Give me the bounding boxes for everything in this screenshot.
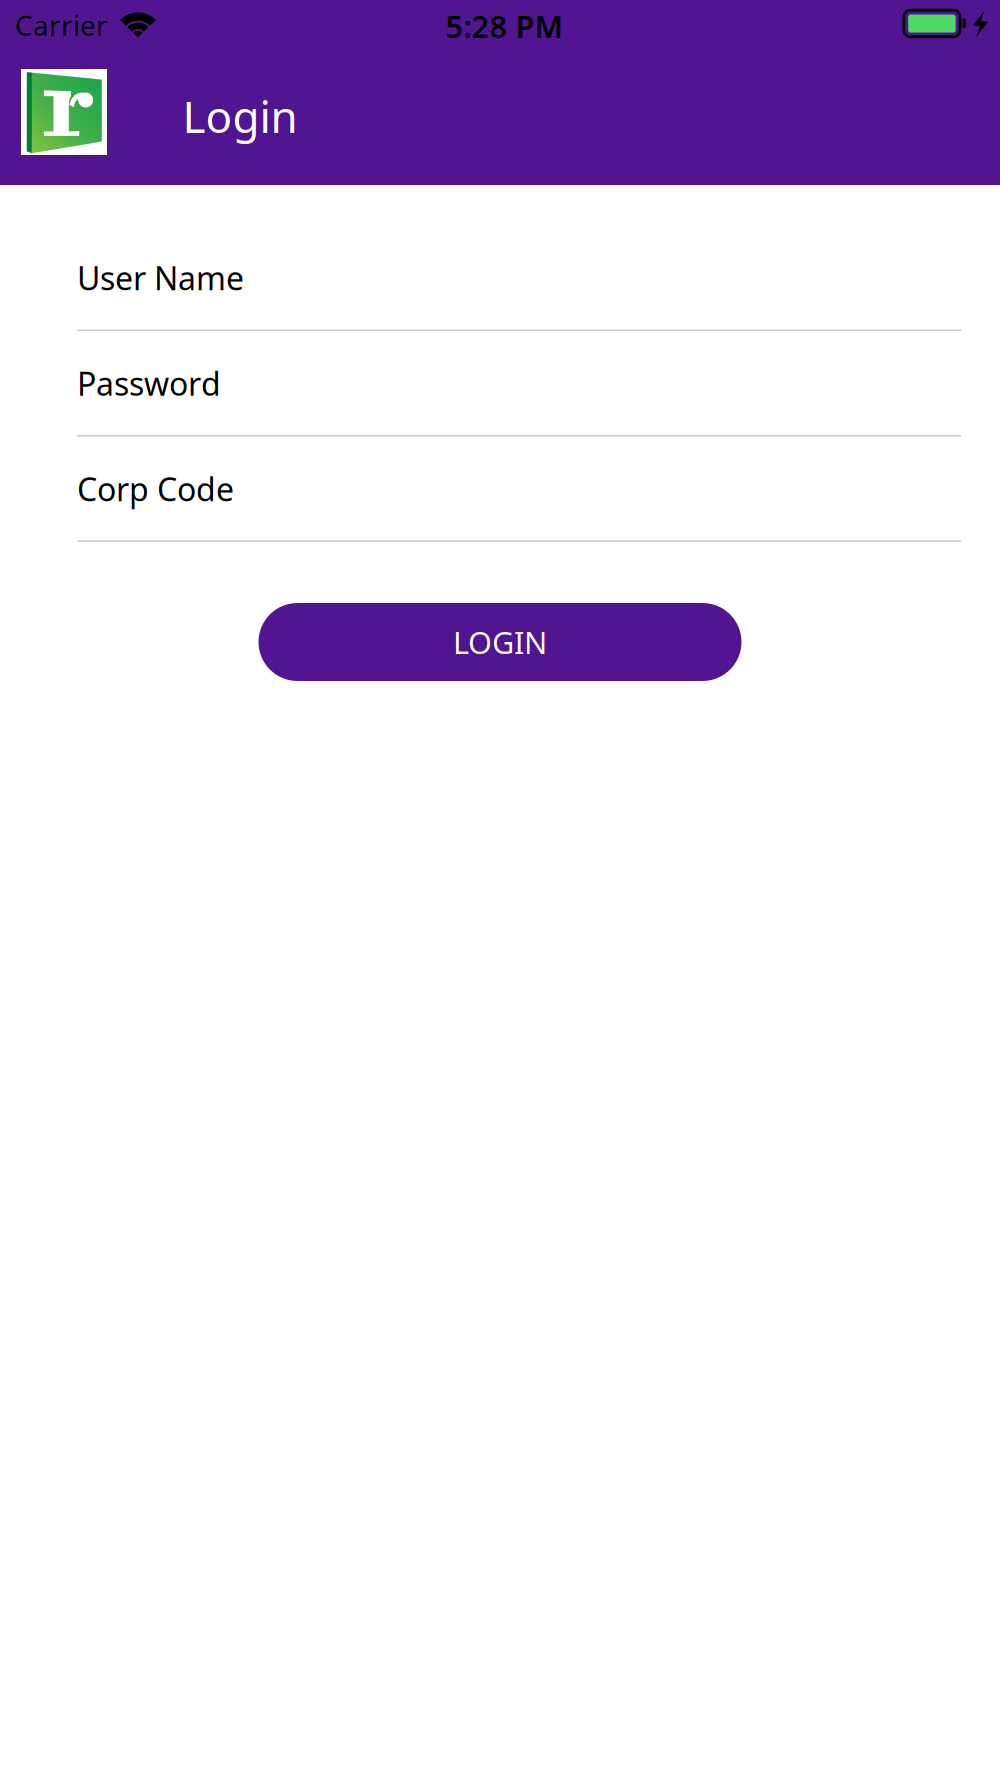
button[interactable]: Home <box>21 69 107 155</box>
button[interactable]: User Name <box>77 225 961 331</box>
staticText: Corp Code <box>77 467 234 510</box>
staticText: Carrier <box>15 6 108 44</box>
staticText: Login <box>182 87 297 145</box>
button[interactable]: Corp Code <box>77 436 961 542</box>
staticText: Password <box>77 362 221 404</box>
staticText: LOGIN <box>453 622 547 662</box>
button[interactable]: LOGIN <box>258 603 741 681</box>
staticText: User Name <box>77 256 244 299</box>
staticText: 5:28 PM <box>445 6 562 46</box>
button[interactable]: Password <box>77 331 961 436</box>
